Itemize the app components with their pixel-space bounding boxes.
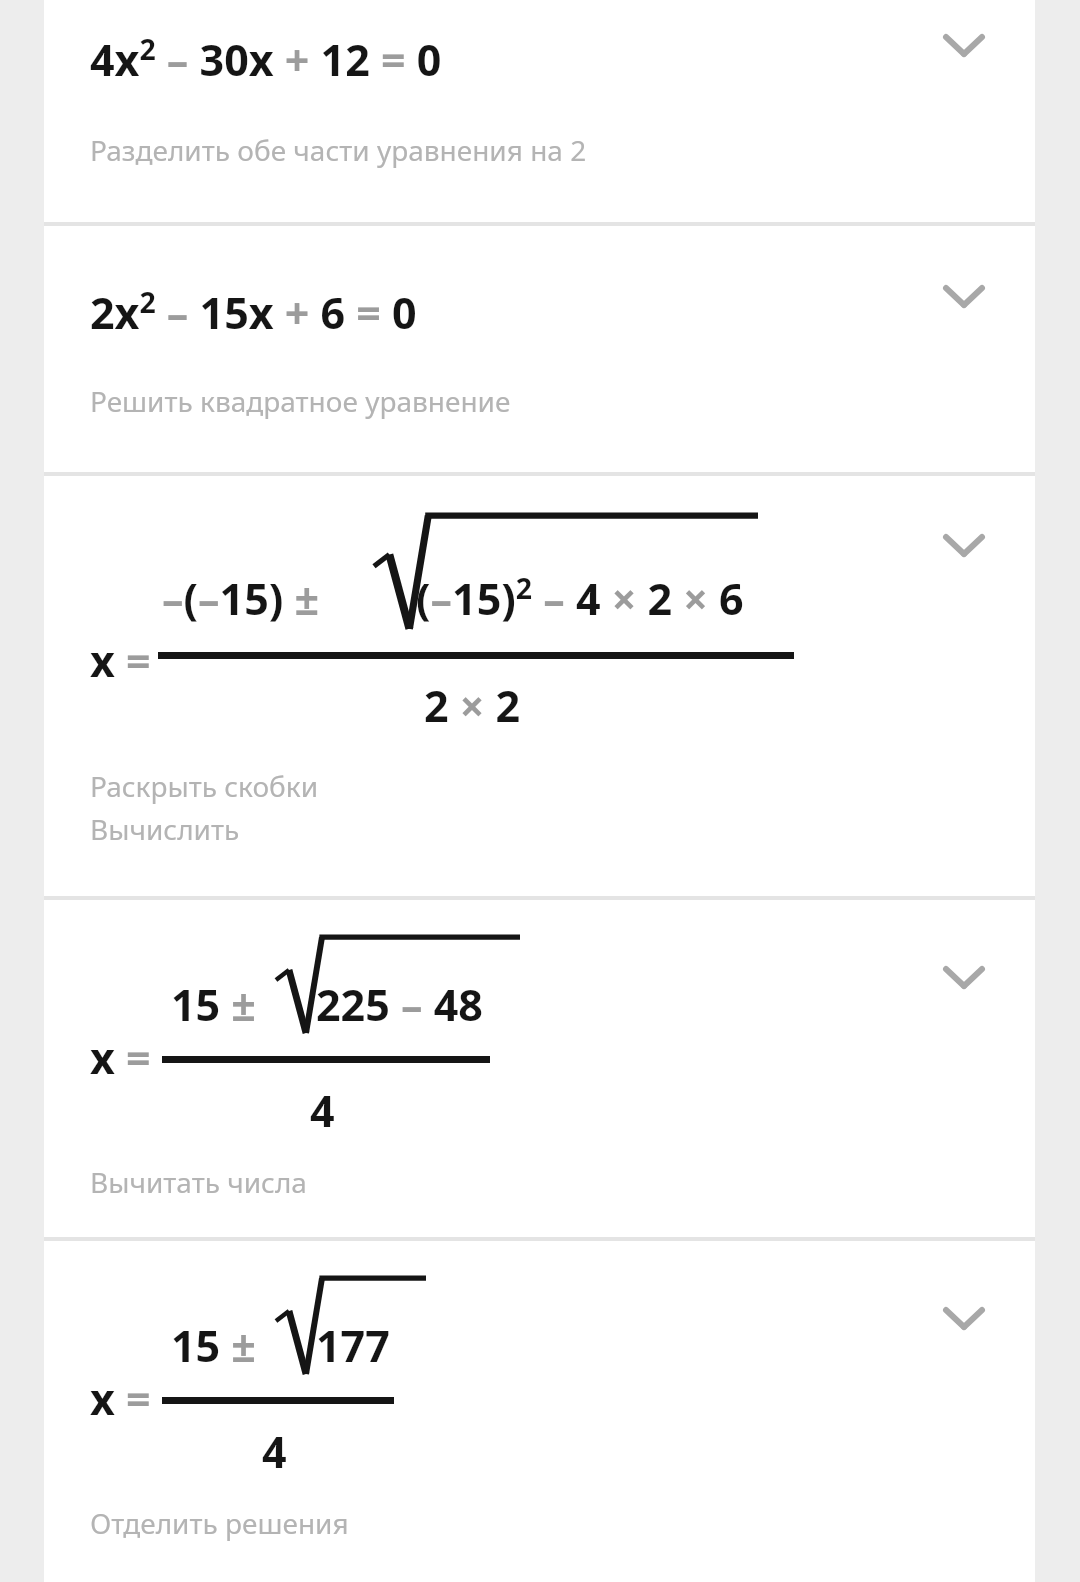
button[interactable]: x = bbox=[44, 1241, 1035, 1582]
staticText: Отделить решения bbox=[90, 1504, 349, 1542]
button[interactable]: x = bbox=[44, 900, 1035, 1237]
staticText: 15 ± bbox=[171, 975, 268, 1034]
staticText: –(–15) ± bbox=[162, 569, 331, 628]
staticText: 2 × 2 bbox=[424, 676, 521, 735]
staticText: x = bbox=[90, 1369, 151, 1428]
staticText: 2x2 – 15x + 6 = 0 bbox=[90, 283, 417, 342]
button[interactable]: 4x2 – 30x + 12 = 0 bbox=[44, 0, 1035, 222]
staticText: (–15)2 – 4 × 2 × 6 bbox=[416, 569, 744, 628]
staticText: Решить квадратное уравнение bbox=[90, 382, 511, 420]
staticText: Вычислить bbox=[90, 810, 240, 848]
button[interactable]: Expand step bbox=[919, 500, 1009, 590]
staticText: 177 bbox=[316, 1316, 390, 1375]
staticText: 225 – 48 bbox=[316, 975, 483, 1034]
button[interactable]: x = bbox=[44, 476, 1035, 896]
staticText: x = bbox=[90, 1028, 151, 1087]
button[interactable]: Expand step bbox=[919, 0, 1009, 90]
staticText: x = bbox=[90, 631, 151, 690]
button[interactable]: Expand step bbox=[919, 251, 1009, 341]
staticText: 4 bbox=[262, 1422, 287, 1481]
button[interactable]: 2x2 – 15x + 6 = 0 bbox=[44, 226, 1035, 472]
button[interactable]: Expand step bbox=[919, 932, 1009, 1022]
staticText: 4x2 – 30x + 12 = 0 bbox=[90, 30, 442, 89]
staticText: 15 ± bbox=[171, 1316, 268, 1375]
staticText: Вычитать числа bbox=[90, 1163, 307, 1201]
staticText: Разделить обе части уравнения на 2 bbox=[90, 131, 587, 169]
staticText: Раскрыть скобки bbox=[90, 767, 319, 805]
button[interactable]: Expand step bbox=[919, 1273, 1009, 1363]
staticText: 4 bbox=[310, 1081, 335, 1140]
